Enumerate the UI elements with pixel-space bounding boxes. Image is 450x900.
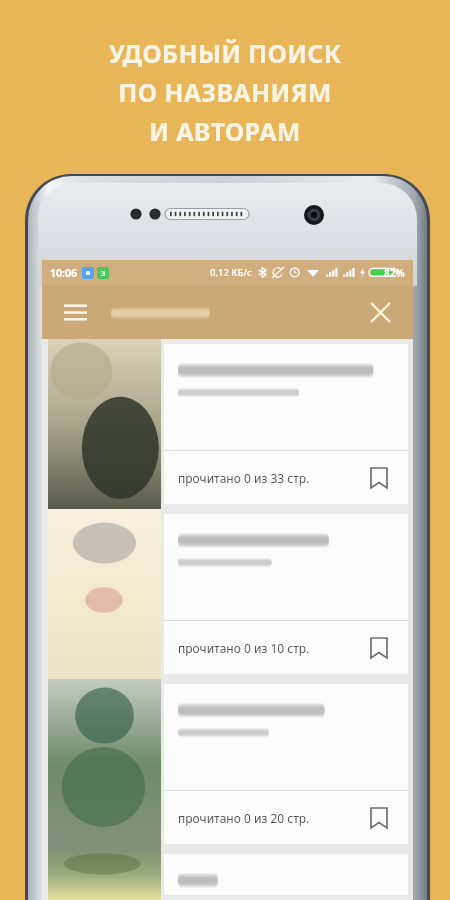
button[interactable]: прочитано 0 из 10 стр. bbox=[42, 509, 413, 679]
staticText: прочитано 0 из 10 стр. bbox=[178, 640, 310, 656]
staticText: 3 bbox=[101, 268, 106, 278]
staticText: прочитано 0 из 33 стр. bbox=[178, 470, 310, 486]
button[interactable]: Bookmark bbox=[363, 462, 395, 494]
button[interactable]: прочитано 0 из 20 стр. bbox=[42, 679, 413, 849]
staticText: ПО НАЗВАНИЯМ bbox=[0, 75, 450, 109]
staticText: 82% bbox=[384, 266, 405, 280]
staticText: прочитано 0 из 20 стр. bbox=[178, 810, 310, 826]
staticText: 10:06 bbox=[50, 266, 77, 280]
button[interactable]: прочитано 0 из 33 стр. bbox=[42, 339, 413, 509]
staticText: УДОБНЫЙ ПОИСК bbox=[0, 36, 450, 70]
button[interactable]: Bookmark bbox=[363, 802, 395, 834]
staticText: И АВТОРАМ bbox=[0, 114, 450, 148]
button[interactable]: Open navigation menu bbox=[53, 290, 97, 334]
button[interactable] bbox=[42, 849, 413, 900]
button[interactable]: Bookmark bbox=[363, 632, 395, 664]
staticText: 0,12 КБ/с bbox=[210, 266, 252, 279]
button[interactable]: Clear search bbox=[358, 290, 402, 334]
